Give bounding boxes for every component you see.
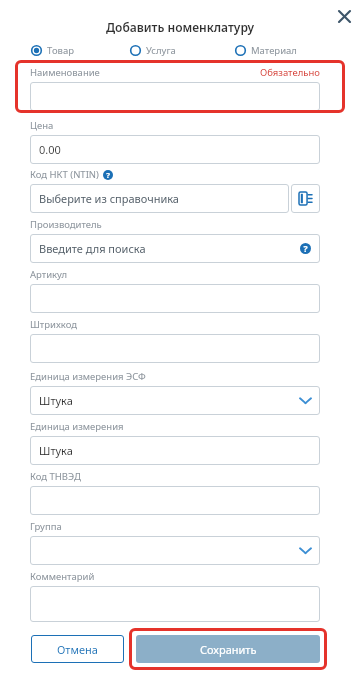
staticText: 0.00	[39, 142, 61, 157]
button[interactable]: Материал	[235, 44, 297, 57]
button[interactable]	[30, 486, 320, 515]
button[interactable]: Раскрыть список групп	[291, 536, 320, 565]
staticText: Комментарий	[30, 570, 95, 583]
button[interactable]: Введите для поиска	[30, 234, 320, 263]
staticText: Код ТНВЭД	[30, 470, 82, 483]
staticText: Штрихкод	[30, 318, 77, 331]
button[interactable]: Отмена	[31, 635, 124, 663]
staticText: Штука	[39, 443, 73, 458]
staticText: ?	[303, 243, 308, 254]
staticText: Код НКТ (NTIN)	[30, 168, 99, 181]
button[interactable]: 0.00	[30, 135, 320, 164]
staticText: Артикул	[30, 268, 68, 281]
button[interactable]: Штука	[30, 386, 320, 415]
staticText: Выберите из справочника	[39, 191, 179, 206]
button[interactable]	[30, 334, 320, 363]
button[interactable]: Раскрыть список	[291, 386, 320, 415]
button[interactable]: Закрыть	[334, 6, 354, 26]
button[interactable]	[30, 82, 320, 111]
staticText: ?	[106, 170, 110, 180]
button[interactable]: Раскрыть список групп	[30, 536, 320, 565]
staticText: Отмена	[57, 642, 98, 657]
staticText: Введите для поиска	[39, 241, 146, 256]
staticText: Сохранить	[200, 642, 257, 657]
staticText: Товар	[47, 44, 74, 57]
button[interactable]: Штука	[30, 436, 320, 465]
button[interactable]	[30, 284, 320, 313]
button[interactable]: Выберите из справочника	[30, 184, 289, 213]
staticText: Цена	[30, 119, 54, 132]
staticText: Материал	[251, 44, 297, 57]
staticText: Штука	[39, 393, 73, 408]
button[interactable]: Товар	[31, 44, 74, 57]
button[interactable]: Выбрать из справочника	[291, 184, 320, 213]
staticText: Единица измерения ЭСФ	[30, 370, 146, 383]
staticText: Производитель	[30, 218, 102, 231]
staticText: Обязательно	[260, 66, 320, 79]
staticText: Группа	[30, 520, 62, 533]
staticText: Добавить номенклатуру	[106, 19, 255, 35]
button[interactable]	[30, 586, 320, 622]
button[interactable]: Сохранить	[136, 635, 320, 663]
staticText: Единица измерения	[30, 420, 124, 433]
button[interactable]: Услуга	[130, 44, 176, 57]
staticText: Наименование	[30, 66, 100, 79]
button[interactable]: Справка	[291, 234, 320, 263]
staticText: Услуга	[146, 44, 176, 57]
